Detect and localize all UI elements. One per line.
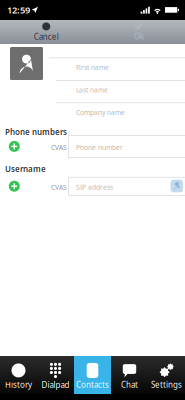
button[interactable]: First name [0, 44, 185, 356]
button[interactable]: Add contact photo [10, 47, 43, 80]
staticText: History [5, 379, 32, 390]
staticText: First name [76, 63, 109, 72]
button[interactable]: Choose from contacts [168, 178, 185, 194]
button[interactable]: Cancel [0, 20, 92, 44]
staticText: Username [5, 163, 46, 174]
button[interactable]: History [0, 356, 37, 394]
staticText: Phone numbers [5, 126, 67, 137]
staticText: 12:59 [7, 4, 30, 16]
staticText: Phone number [76, 143, 123, 152]
button[interactable]: Add CVAS [6, 178, 23, 195]
staticText: Cancel [34, 31, 59, 42]
staticText: Settings [151, 379, 182, 390]
staticText: Chat [121, 379, 138, 390]
button[interactable]: Ok [92, 20, 185, 44]
staticText: Last name [76, 85, 108, 94]
staticText: Company name [76, 108, 125, 117]
staticText: CVAS [51, 143, 67, 152]
button[interactable]: Last name [0, 44, 185, 356]
staticText: SIP address [76, 183, 113, 192]
button[interactable]: Contacts [74, 356, 111, 394]
button[interactable]: Add CVAS [6, 138, 23, 155]
staticText: CVAS [51, 183, 67, 192]
button[interactable]: Chat [111, 356, 148, 394]
staticText: Ok [134, 31, 144, 42]
staticText: Contacts [76, 379, 109, 390]
button[interactable]: Company name [0, 44, 185, 356]
button[interactable]: Settings [148, 356, 185, 394]
button[interactable]: Dialpad [37, 356, 74, 394]
staticText: Dialpad [41, 380, 69, 390]
